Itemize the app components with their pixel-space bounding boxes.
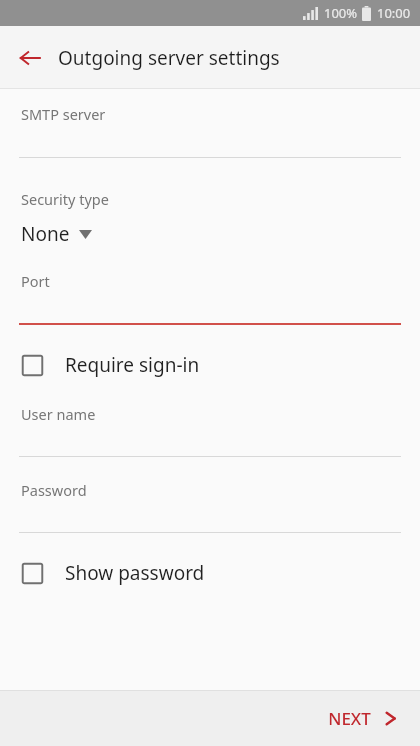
staticText: Port <box>21 271 50 291</box>
staticText: Outgoing server settings <box>58 45 280 71</box>
staticText: 10:00 <box>377 4 411 22</box>
staticText: 100% <box>324 4 358 22</box>
staticText: Password <box>21 480 87 500</box>
button[interactable]: Back <box>10 38 50 78</box>
staticText: None <box>21 221 70 247</box>
staticText: SMTP server <box>21 104 106 124</box>
button[interactable]: Require sign-in <box>0 348 420 382</box>
staticText: Security type <box>21 189 109 209</box>
staticText: User name <box>21 404 96 424</box>
staticText: NEXT <box>328 707 371 730</box>
staticText: Require sign-in <box>65 352 200 378</box>
button[interactable]: None <box>0 219 420 249</box>
staticText: Show password <box>65 560 205 586</box>
button[interactable]: Show password <box>0 556 420 590</box>
button[interactable]: NEXT <box>316 699 408 738</box>
